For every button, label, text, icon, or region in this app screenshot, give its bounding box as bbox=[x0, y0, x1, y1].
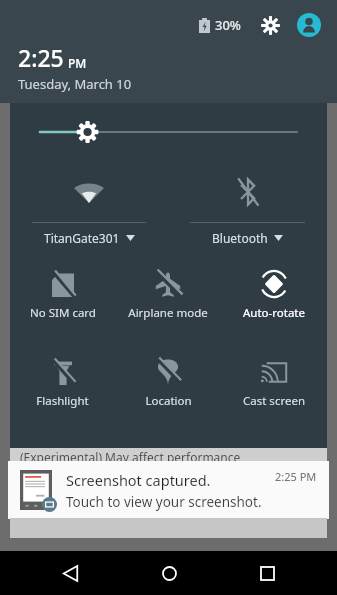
staticText: Touch to view your screenshot. bbox=[66, 493, 262, 511]
staticText: Tuesday, March 10 bbox=[18, 75, 132, 93]
button[interactable]: Brightness bbox=[10, 103, 327, 161]
staticText: Bluetooth bbox=[212, 230, 268, 246]
staticText: Flashlight bbox=[36, 393, 89, 409]
staticText: PM bbox=[68, 55, 87, 71]
button[interactable]: Airplane mode bbox=[115, 263, 221, 337]
staticText: Auto-rotate bbox=[243, 305, 305, 321]
button[interactable]: Cast screen bbox=[221, 351, 327, 425]
button[interactable]: Location bbox=[115, 351, 221, 425]
button[interactable]: User profile bbox=[297, 13, 321, 37]
button[interactable]: Recent apps bbox=[239, 551, 295, 595]
staticText: (Experimental) May affect performance bbox=[20, 449, 241, 465]
staticText: Screenshot captured. bbox=[66, 470, 211, 490]
button[interactable]: Back bbox=[42, 551, 98, 595]
button[interactable]: No SIM card bbox=[10, 263, 115, 337]
button[interactable]: Home bbox=[141, 551, 197, 595]
staticText: Cast screen bbox=[243, 393, 305, 409]
staticText: 2:25 bbox=[18, 42, 64, 73]
button[interactable]: Auto-rotate bbox=[221, 263, 327, 337]
button[interactable]: Bluetooth bbox=[168, 161, 327, 253]
button[interactable]: Screenshot captured. bbox=[8, 461, 329, 519]
button[interactable]: Settings bbox=[257, 12, 283, 38]
staticText: Airplane mode bbox=[128, 305, 208, 321]
button[interactable]: Flashlight bbox=[10, 351, 115, 425]
staticText: Location bbox=[145, 393, 192, 409]
staticText: 30% bbox=[215, 16, 241, 34]
staticText: TitanGate301 bbox=[44, 230, 120, 246]
staticText: 2:25 PM bbox=[275, 469, 317, 484]
staticText: No SIM card bbox=[30, 305, 96, 321]
button[interactable]: TitanGate301 bbox=[10, 161, 168, 253]
